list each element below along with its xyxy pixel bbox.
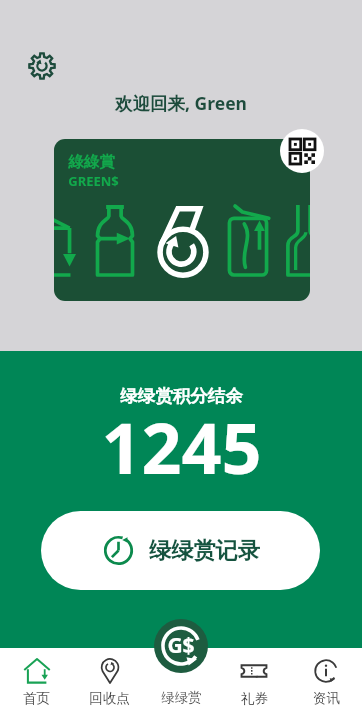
button[interactable]: 资讯 [290, 648, 362, 720]
staticText: 绿绿赏 [161, 689, 202, 706]
staticText: 资讯 [313, 690, 340, 707]
button[interactable]: QR code [280, 129, 324, 173]
staticText: 綠綠賞 [68, 152, 115, 172]
staticText: 欢迎回来, Green [115, 91, 247, 115]
button[interactable]: 绿绿赏记录 [41, 511, 320, 590]
button[interactable]: 礼券 [218, 648, 290, 720]
staticText: 回收点 [89, 690, 130, 707]
staticText: 礼券 [241, 690, 268, 707]
button[interactable]: 绿绿赏 [154, 619, 208, 673]
staticText: GREEN$ [68, 172, 119, 190]
button[interactable]: 首页 [0, 648, 73, 720]
button[interactable]: Settings [28, 52, 56, 80]
staticText: G$ [167, 631, 195, 660]
button[interactable]: 綠綠賞 [54, 139, 310, 301]
staticText: 绿绿赏记录 [149, 537, 260, 565]
staticText: 绿绿赏积分结余 [120, 385, 243, 407]
staticText: 1245 [101, 399, 262, 494]
staticText: 首页 [23, 690, 50, 707]
button[interactable]: 回收点 [73, 648, 146, 720]
